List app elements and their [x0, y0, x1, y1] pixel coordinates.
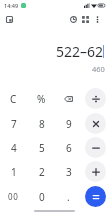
- staticText: 460: [92, 64, 105, 74]
- staticText: 3: [66, 165, 72, 179]
- staticText: 9: [66, 117, 72, 131]
- button[interactable]: 6: [58, 137, 79, 158]
- button[interactable]: Scientific: [79, 13, 91, 25]
- staticText: 522–62: [56, 42, 104, 61]
- staticText: 6: [66, 141, 72, 155]
- staticText: 1: [11, 165, 17, 179]
- button[interactable]: 3: [58, 161, 79, 182]
- staticText: 5: [39, 141, 45, 155]
- button[interactable]: 7: [3, 113, 24, 134]
- staticText: 7: [11, 117, 17, 131]
- button[interactable]: 1: [3, 161, 24, 182]
- staticText: 4: [11, 141, 17, 155]
- button[interactable]: Multiply: [85, 113, 106, 134]
- button[interactable]: C: [3, 88, 24, 109]
- button[interactable]: Backspace: [58, 88, 79, 109]
- staticText: C: [10, 92, 17, 106]
- button[interactable]: 4: [3, 137, 24, 158]
- button[interactable]: Equals: [85, 186, 106, 207]
- staticText: 2: [39, 165, 45, 179]
- button[interactable]: 5: [31, 137, 52, 158]
- button[interactable]: %: [31, 88, 52, 109]
- staticText: 0: [39, 190, 45, 204]
- button[interactable]: Add: [85, 161, 106, 182]
- staticText: %: [37, 92, 46, 106]
- button[interactable]: .: [58, 186, 79, 207]
- button[interactable]: History: [3, 13, 15, 25]
- button[interactable]: Timer: [67, 13, 79, 25]
- staticText: .: [67, 190, 70, 204]
- staticText: 14:49: [4, 2, 19, 9]
- staticText: 00: [8, 191, 19, 202]
- button[interactable]: 0: [31, 186, 52, 207]
- staticText: 8: [39, 117, 45, 131]
- button[interactable]: 00: [3, 186, 24, 207]
- button[interactable]: Subtract: [85, 137, 106, 158]
- button[interactable]: 2: [31, 161, 52, 182]
- button[interactable]: 8: [31, 113, 52, 134]
- button[interactable]: 9: [58, 113, 79, 134]
- button[interactable]: Divide: [85, 88, 106, 109]
- button[interactable]: More options: [91, 13, 103, 25]
